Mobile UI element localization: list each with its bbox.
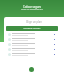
staticText: Elige un plan [4,20,64,24]
button[interactable] [4,52,64,57]
staticText: COTIZAR AHORA [23,27,41,30]
staticText: Cotizar seguro [0,5,64,9]
button[interactable] [4,42,64,47]
button[interactable]: COTIZAR AHORA [6,26,58,31]
staticText: Elige tu aseguradora [0,8,64,11]
button[interactable]: Add [29,67,34,72]
button[interactable] [4,47,64,52]
button[interactable] [4,37,64,42]
button[interactable] [4,32,64,37]
